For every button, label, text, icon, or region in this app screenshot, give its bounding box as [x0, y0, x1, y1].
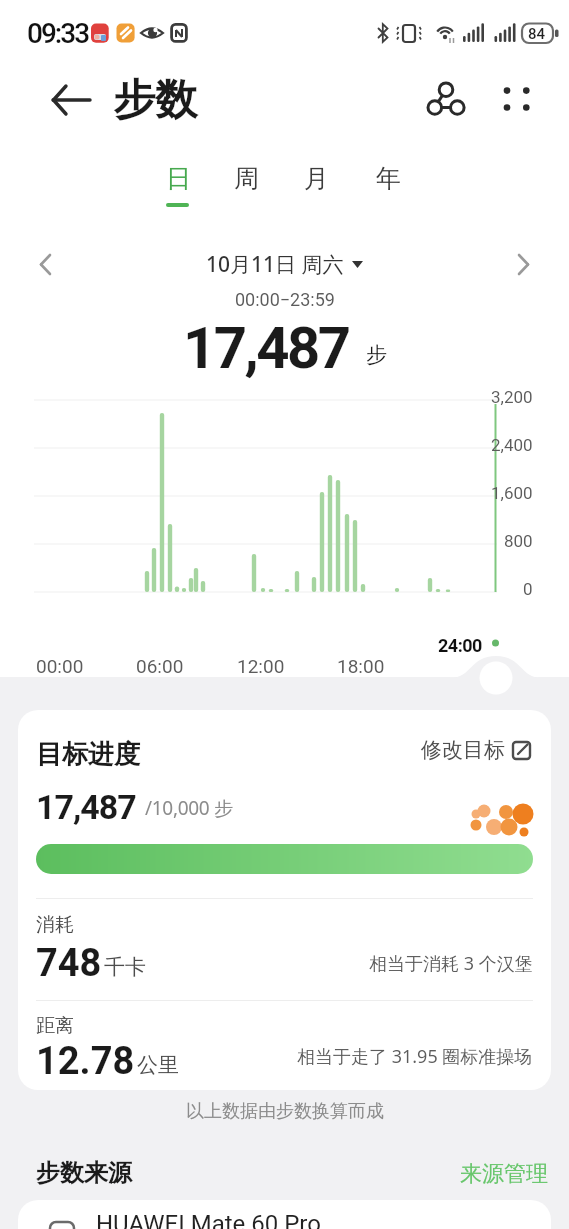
staticText: 步	[366, 342, 387, 368]
button[interactable]: 来源管理	[460, 1160, 548, 1188]
staticText: 2,400	[491, 435, 533, 455]
staticText: 00:00	[36, 655, 84, 677]
staticText: 00:00−23:59	[235, 289, 335, 310]
staticText: 748	[36, 941, 102, 986]
staticText: 18:00	[337, 655, 385, 677]
staticText: 日	[166, 163, 191, 194]
button[interactable]: 10月11日 周六	[206, 250, 363, 279]
staticText: 12.78	[36, 1039, 135, 1084]
staticText: 周	[234, 163, 259, 194]
staticText: 10月11日 周六	[206, 250, 344, 279]
button[interactable]	[496, 76, 540, 120]
staticText: 12:00	[237, 655, 285, 677]
staticText: 3,200	[491, 387, 533, 407]
staticText: 步数	[113, 74, 197, 127]
button[interactable]: 周	[216, 160, 276, 208]
button[interactable]	[26, 246, 64, 284]
staticText: 1,600	[491, 483, 533, 503]
staticText: 距离	[36, 1014, 74, 1038]
button[interactable]: 修改目标	[421, 737, 533, 763]
staticText: 17,487	[183, 314, 349, 382]
staticText: 修改目标	[421, 737, 505, 763]
button[interactable]: 日	[148, 160, 208, 208]
button[interactable]	[40, 78, 84, 122]
staticText: 09:33	[27, 17, 89, 50]
staticText: 24:00	[438, 635, 482, 656]
button[interactable]	[424, 76, 470, 122]
staticText: HUAWEI Mate 60 Pro	[96, 1210, 321, 1229]
staticText: 相当于走了 31.95 圈标准操场	[297, 1044, 533, 1069]
staticText: 消耗	[36, 913, 74, 937]
button[interactable]: 年	[358, 160, 418, 208]
staticText: /10,000 步	[145, 795, 233, 821]
staticText: 800	[504, 531, 533, 551]
staticText: 相当于消耗 3 个汉堡	[369, 951, 533, 976]
staticText: 84	[528, 25, 546, 43]
staticText: 月	[304, 163, 329, 194]
staticText: 年	[376, 163, 401, 194]
button[interactable]: 月	[286, 160, 346, 208]
staticText: 目标进度	[36, 738, 140, 771]
staticText: 千卡	[104, 954, 146, 980]
button[interactable]	[505, 246, 543, 284]
staticText: 以上数据由步数换算而成	[186, 1100, 384, 1123]
staticText: 06:00	[136, 655, 184, 677]
staticText: 17,487	[36, 787, 136, 827]
staticText: 步数来源	[36, 1158, 132, 1188]
button[interactable]: HUAWEI Mate 60 Pro	[18, 1200, 551, 1229]
staticText: 0	[523, 579, 533, 599]
staticText: 公里	[137, 1052, 179, 1078]
